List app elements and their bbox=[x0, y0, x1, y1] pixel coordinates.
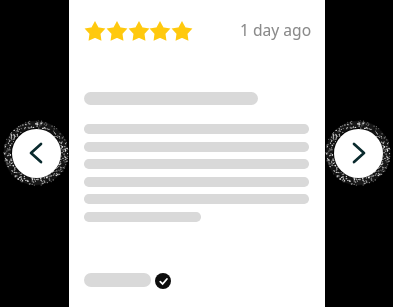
button[interactable]: Rated 5 out of 5 stars bbox=[84, 20, 196, 44]
button[interactable]: Rated 5 out of 5 stars bbox=[69, 0, 325, 307]
button[interactable]: Verified purchase bbox=[155, 273, 171, 289]
button[interactable]: Previous review bbox=[4, 121, 68, 185]
button[interactable]: Next review bbox=[326, 121, 390, 185]
staticText: 1 day ago bbox=[240, 19, 312, 40]
